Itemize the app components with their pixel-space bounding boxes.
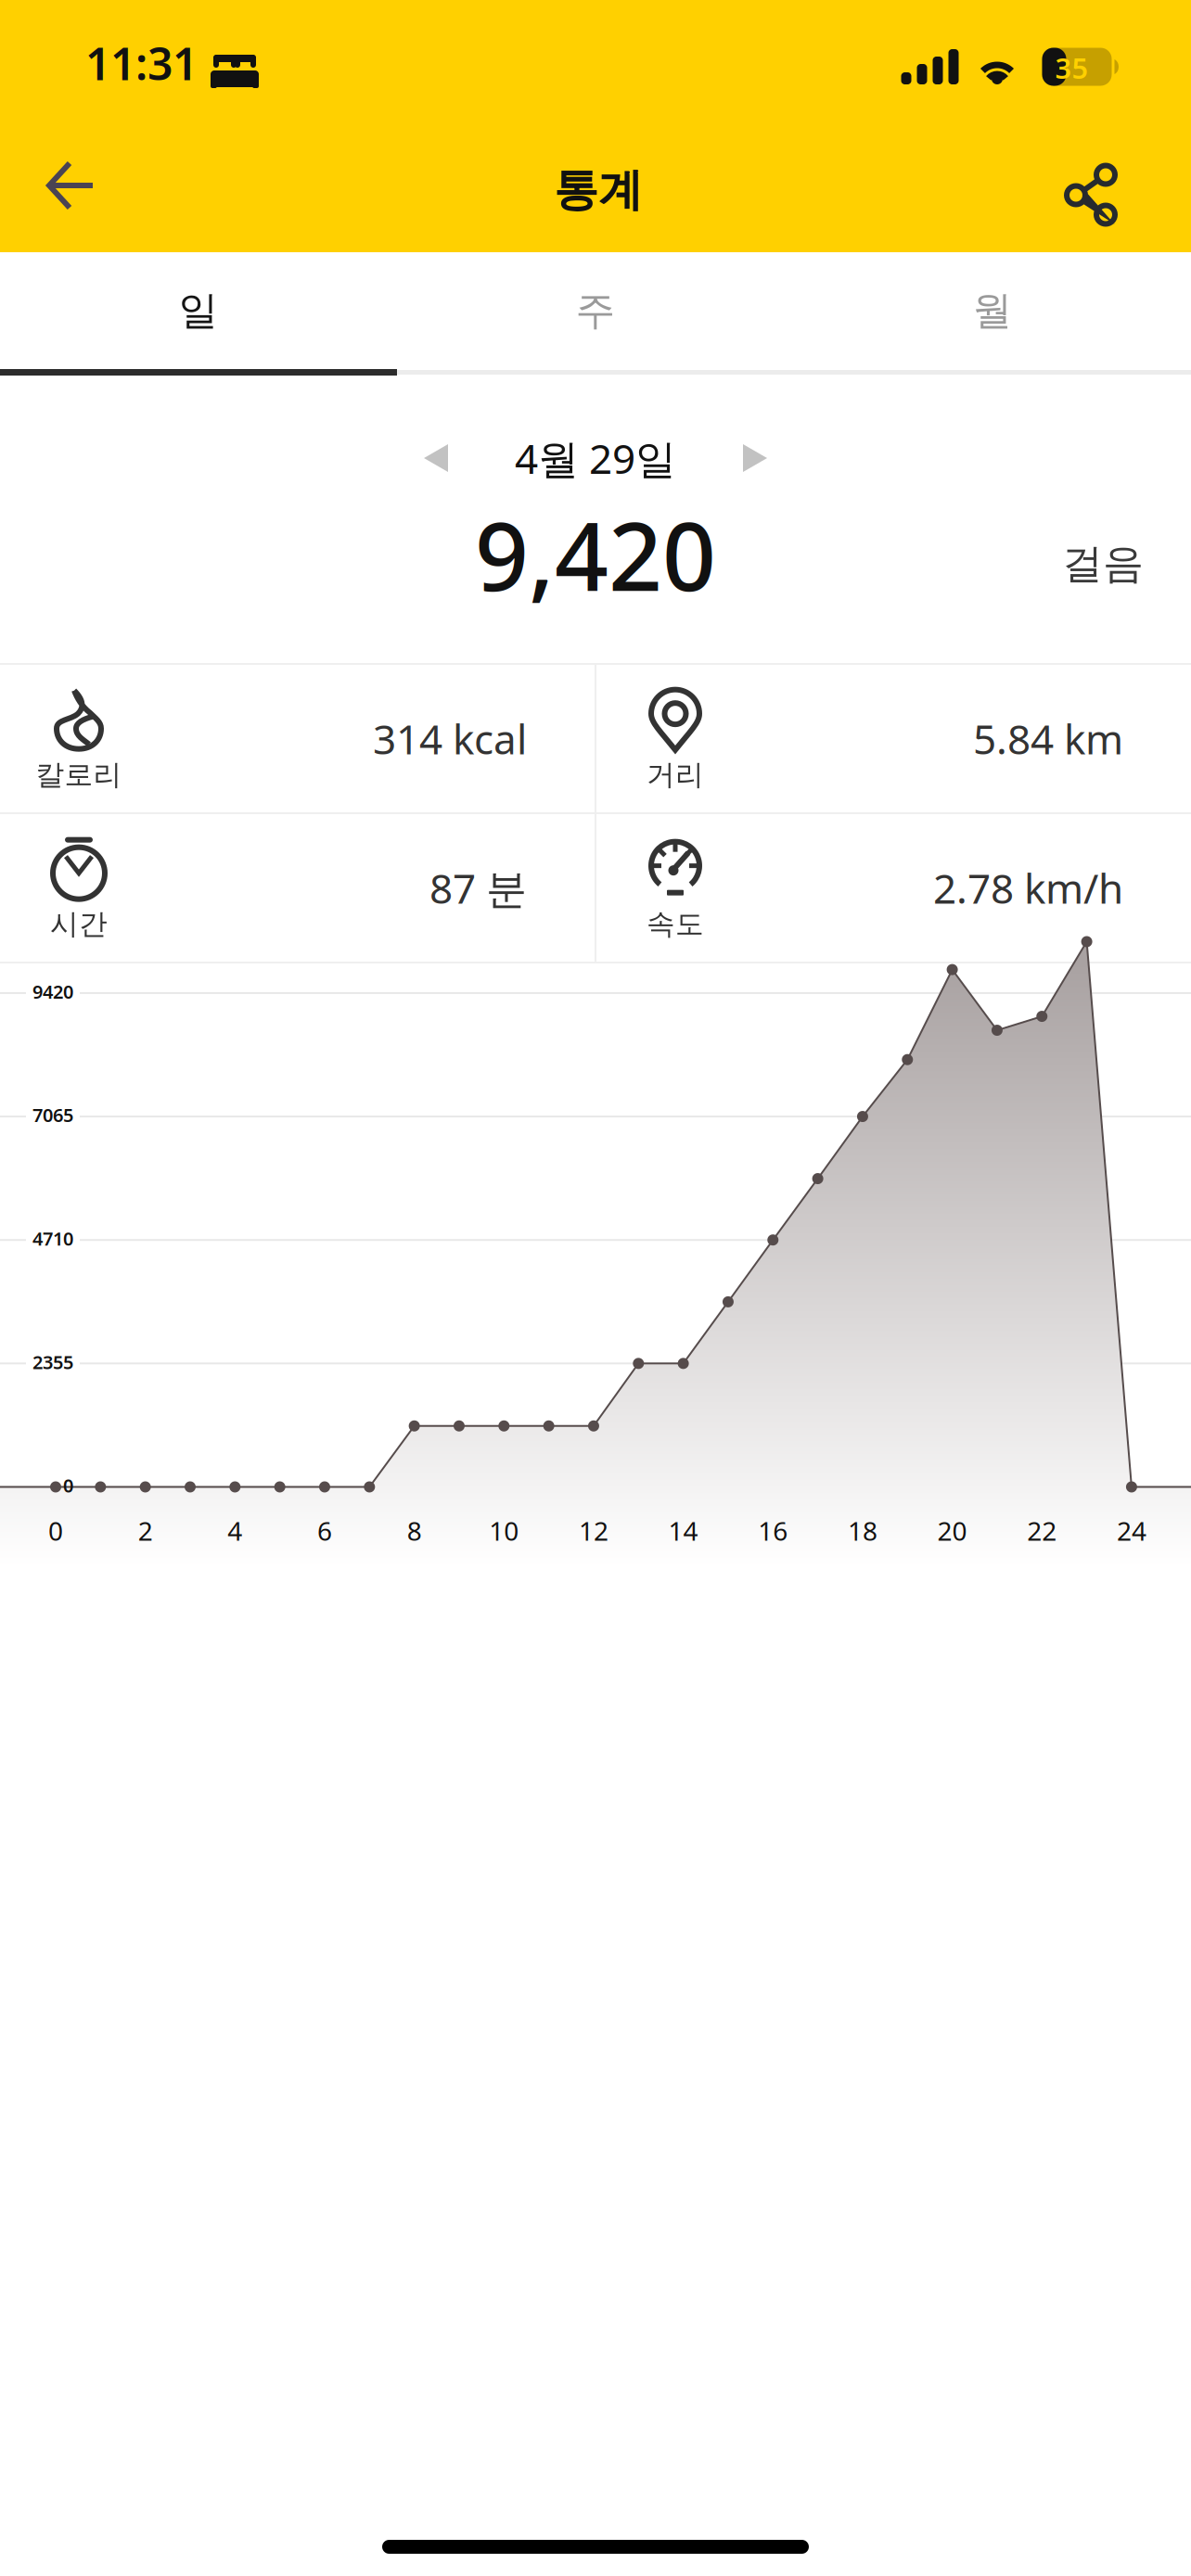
staticText: 속도 [647,907,704,942]
staticText: 2 [138,1513,153,1548]
staticText: 24 [1117,1513,1146,1548]
staticText: 11:31 [85,33,198,93]
staticText: 20 [937,1513,967,1548]
button[interactable]: Back [0,119,180,252]
staticText: 주 [576,286,615,335]
staticText: 0 [63,1473,73,1498]
staticText: 칼로리 [36,757,122,792]
staticText: 걸음 [1062,539,1144,589]
staticText: 6 [317,1513,332,1548]
staticText: 9420 [32,979,73,1004]
button[interactable]: 주 [397,252,794,369]
staticText: 16 [758,1513,788,1548]
staticText: 일 [179,286,218,335]
staticText: 월 [973,286,1012,335]
staticText: 9,420 [475,492,716,617]
staticText: 0 [48,1513,63,1548]
staticText: 10 [489,1513,519,1548]
staticText: 18 [848,1513,877,1548]
button[interactable]: Next day [732,431,778,485]
staticText: 8 [407,1513,422,1548]
staticText: 2355 [32,1349,73,1374]
staticText: 14 [668,1513,698,1548]
staticText: 5.84 km [973,712,1123,766]
button[interactable]: 월 [794,252,1191,369]
staticText: 87 분 [429,861,527,915]
button[interactable]: Previous day [413,431,459,485]
button[interactable]: Share [982,119,1191,252]
staticText: 4710 [32,1226,73,1251]
staticText: 7065 [32,1103,73,1127]
staticText: 4 [228,1513,242,1548]
staticText: 12 [579,1513,608,1548]
staticText: 314 kcal [373,712,527,766]
button[interactable]: 일 [0,252,397,369]
staticText: 4월 29일 [515,431,676,485]
staticText: 2.78 km/h [933,861,1123,915]
staticText: 35 [1055,49,1089,87]
staticText: 통계 [554,163,643,217]
staticText: 거리 [647,757,704,792]
staticText: 시간 [50,907,108,942]
staticText: 22 [1027,1513,1057,1548]
